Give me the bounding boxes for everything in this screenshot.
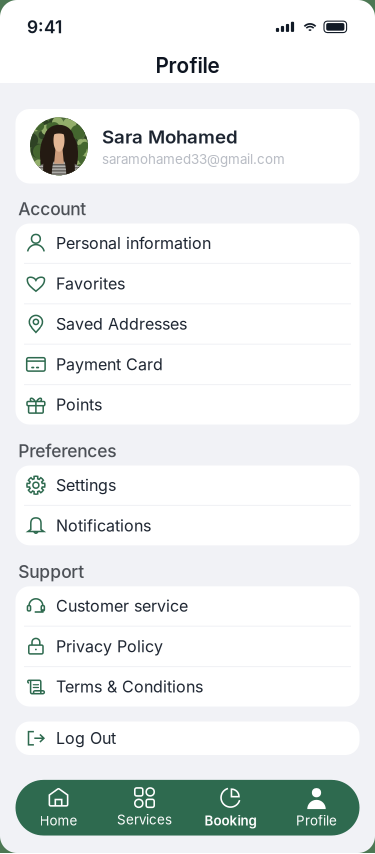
staticText: Settings	[56, 475, 116, 495]
staticText: Saved Addresses	[56, 314, 187, 334]
staticText: 9:41	[27, 16, 62, 37]
staticText: Account	[18, 198, 86, 219]
button[interactable]: Sara Mohamed	[15, 109, 359, 183]
staticText: Support	[18, 561, 84, 582]
staticText: Personal information	[56, 233, 211, 253]
staticText: Terms & Conditions	[56, 677, 203, 696]
staticText: Payment Card	[56, 355, 163, 374]
staticText: Services	[117, 812, 172, 828]
button[interactable]: Payment Card	[15, 345, 359, 384]
staticText: Notifications	[56, 516, 151, 535]
staticText: Favorites	[56, 274, 125, 293]
button[interactable]: Services	[101, 780, 187, 835]
button[interactable]: Points	[15, 385, 359, 424]
staticText: Privacy Policy	[56, 637, 163, 656]
button[interactable]: Log Out	[15, 721, 359, 755]
staticText: saramohamed33@gmail.com	[102, 151, 285, 167]
staticText: Profile	[155, 53, 219, 78]
button[interactable]: Customer service	[15, 586, 359, 626]
staticText: Log Out	[56, 729, 116, 748]
button[interactable]: Favorites	[15, 264, 359, 303]
button[interactable]: Booking	[187, 780, 273, 835]
button[interactable]: Saved Addresses	[15, 304, 359, 344]
button[interactable]: Privacy Policy	[15, 627, 359, 666]
button[interactable]: Home	[15, 780, 101, 835]
staticText: Preferences	[18, 440, 116, 461]
staticText: Customer service	[56, 596, 188, 616]
button[interactable]: Profile	[273, 780, 359, 835]
staticText: Home	[39, 813, 77, 829]
staticText: Profile	[296, 813, 337, 829]
button[interactable]: Personal information	[15, 223, 359, 263]
button[interactable]: Settings	[15, 465, 359, 505]
button[interactable]: Notifications	[15, 506, 359, 545]
staticText: Booking	[204, 813, 256, 829]
staticText: Points	[56, 395, 102, 414]
staticText: Sara Mohamed	[102, 125, 238, 148]
button[interactable]: Terms & Conditions	[15, 667, 359, 706]
